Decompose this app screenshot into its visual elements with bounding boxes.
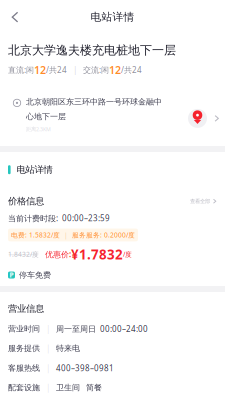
staticText: 停车免费	[19, 270, 51, 280]
staticText: 12	[34, 63, 46, 77]
staticText: 北京大学逸夫楼充电桩地下一层	[8, 43, 176, 58]
button[interactable]: 查看全部	[190, 198, 217, 204]
staticText: 配套设施	[8, 383, 40, 392]
staticText: 交流:闲	[83, 64, 109, 75]
staticText: 当前计费时段: 00:00–23:59	[8, 213, 110, 223]
staticText: ¥1.7832	[71, 245, 123, 263]
staticText: 距离2.3KM	[26, 126, 51, 133]
staticText: |	[46, 343, 50, 354]
staticText: 服务服务: 0.2000/度	[72, 231, 135, 239]
staticText: /共24	[121, 64, 142, 75]
staticText: /共24	[46, 64, 67, 75]
staticText: 北京朝阳区东三环中路一号环球金融中心地下一层	[26, 97, 162, 122]
staticText: 电站详情	[17, 164, 53, 175]
staticText: 12	[109, 63, 121, 77]
staticText: 卫生间 简餐	[56, 383, 102, 392]
staticText: 电站详情	[90, 10, 134, 23]
staticText: 直流:闲	[8, 64, 34, 75]
staticText: 查看全部	[190, 198, 210, 204]
staticText: 电费: 1.5832/度	[11, 231, 60, 239]
staticText: 营业时间	[8, 324, 40, 334]
staticText: 客服热线	[8, 363, 40, 373]
staticText: 价格信息	[8, 195, 44, 207]
button[interactable]	[0, 0, 30, 34]
staticText: |	[67, 64, 83, 75]
staticText: 服务提供	[8, 343, 40, 353]
button[interactable]: 北京朝阳区东三环中路一号环球金融中心地下一层	[0, 77, 225, 128]
staticText: |	[46, 323, 50, 334]
staticText: 营业信息	[8, 303, 44, 314]
staticText: P	[9, 271, 13, 279]
staticText: |	[46, 363, 50, 373]
staticText: 优惠价:	[39, 249, 71, 259]
staticText: 1.8432/度	[8, 250, 39, 259]
staticText: |	[46, 382, 50, 393]
staticText: /度	[123, 250, 132, 259]
staticText: 400–398–0981	[56, 363, 114, 373]
staticText: |	[60, 231, 72, 239]
staticText: 特来电	[56, 343, 80, 353]
staticText: 周一至周日 00:00–24:00	[56, 323, 148, 334]
